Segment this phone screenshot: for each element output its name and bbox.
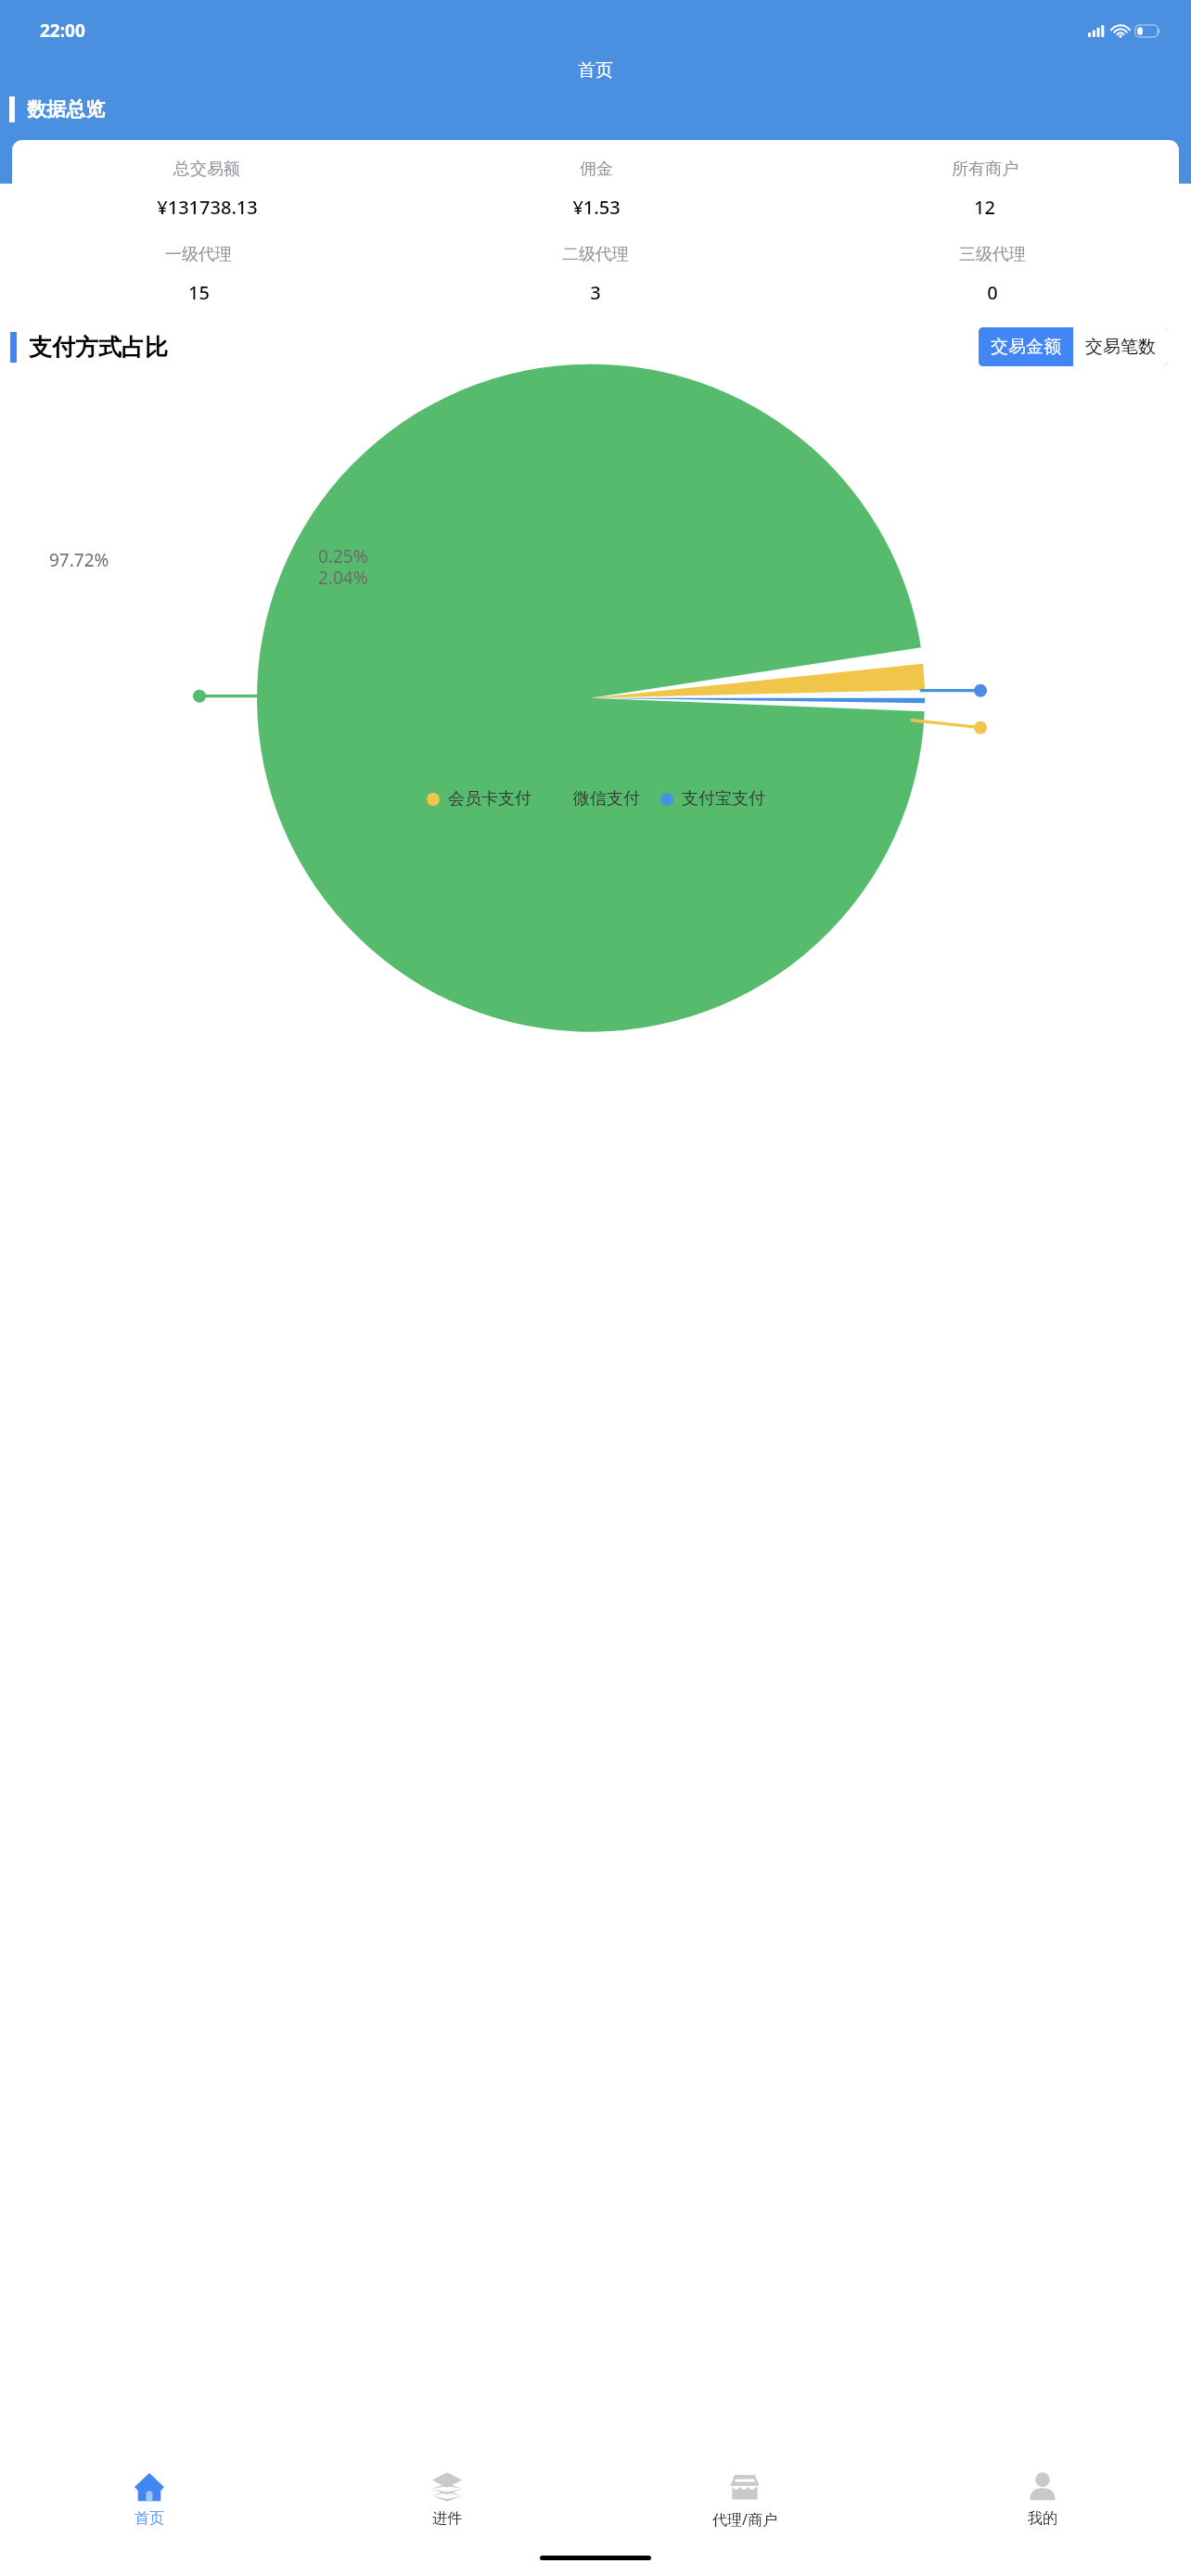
button[interactable]: 交易笔数 — [1073, 327, 1168, 366]
staticText: 0.25% — [318, 544, 368, 568]
staticText: 微信支付 — [573, 788, 640, 810]
staticText: 97.72% — [49, 548, 109, 572]
staticText: 0 — [987, 280, 998, 305]
button[interactable]: 进件 — [298, 2458, 595, 2546]
staticText: 3 — [590, 280, 601, 305]
staticText: 进件 — [432, 2509, 462, 2528]
staticText: 支付方式占比 — [29, 333, 168, 362]
staticText: 首页 — [578, 59, 613, 82]
staticText: 二级代理 — [562, 244, 629, 265]
staticText: 15 — [188, 280, 210, 305]
staticText: 支付宝支付 — [682, 788, 765, 810]
button[interactable]: 代理/商户 — [595, 2458, 893, 2546]
staticText: 佣金 — [580, 159, 613, 180]
staticText: 数据总览 — [27, 97, 105, 121]
staticText: 首页 — [134, 2509, 164, 2528]
staticText: 交易笔数 — [1085, 336, 1156, 358]
staticText: 所有商户 — [952, 159, 1018, 180]
staticText: ¥1.53 — [572, 195, 621, 220]
staticText: 会员卡支付 — [448, 788, 531, 810]
staticText: 一级代理 — [165, 244, 232, 265]
staticText: 交易金额 — [991, 336, 1061, 358]
staticText: 2.04% — [318, 566, 368, 590]
button[interactable]: 交易金额 — [979, 327, 1073, 366]
staticText: 代理/商户 — [712, 2509, 777, 2530]
staticText: 12 — [974, 195, 995, 220]
staticText: 22:00 — [40, 19, 85, 43]
staticText: 三级代理 — [959, 244, 1026, 265]
staticText: 总交易额 — [173, 159, 240, 180]
button[interactable]: 首页 — [0, 2458, 298, 2546]
staticText: ¥131738.13 — [157, 195, 258, 220]
staticText: 我的 — [1028, 2509, 1057, 2528]
button[interactable]: 我的 — [893, 2458, 1191, 2546]
